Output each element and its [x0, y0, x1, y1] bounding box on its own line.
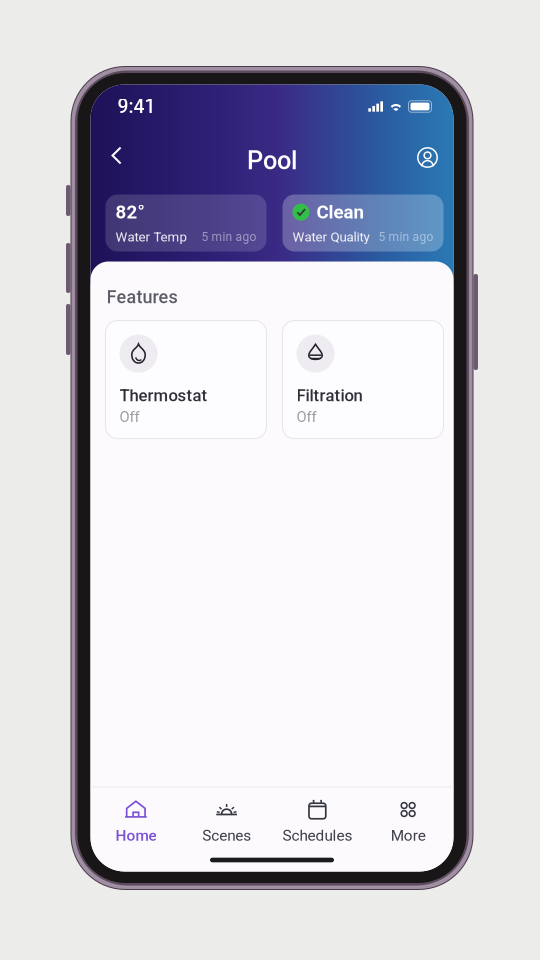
button[interactable]: Account — [405, 138, 449, 182]
staticText: Thermostat — [119, 386, 207, 405]
button[interactable]: Filtration — [282, 321, 443, 439]
staticText: Off — [119, 408, 139, 426]
button[interactable]: 82° — [105, 194, 266, 251]
staticText: Pool — [247, 146, 297, 175]
button[interactable]: Thermostat — [105, 321, 266, 439]
button[interactable]: Back — [94, 138, 138, 182]
staticText: 9:41 — [117, 95, 155, 118]
staticText: Filtration — [296, 386, 362, 405]
button[interactable]: Schedules — [272, 787, 363, 848]
staticText: 82° — [115, 201, 144, 223]
button[interactable]: More — [363, 787, 454, 848]
staticText: Schedules — [282, 826, 352, 844]
button[interactable]: Scenes — [181, 787, 272, 848]
staticText: Water Temp — [115, 229, 186, 245]
button[interactable]: Clean — [282, 194, 443, 251]
staticText: Home — [115, 826, 156, 844]
staticText: Features — [106, 286, 177, 308]
staticText: 5 min ago — [201, 230, 256, 244]
staticText: Off — [296, 408, 316, 426]
staticText: Scenes — [202, 826, 251, 844]
staticText: Clean — [316, 201, 363, 223]
staticText: More — [391, 826, 426, 844]
staticText: Water Quality — [292, 229, 369, 245]
button[interactable]: Home — [90, 787, 181, 848]
staticText: 5 min ago — [378, 230, 433, 244]
